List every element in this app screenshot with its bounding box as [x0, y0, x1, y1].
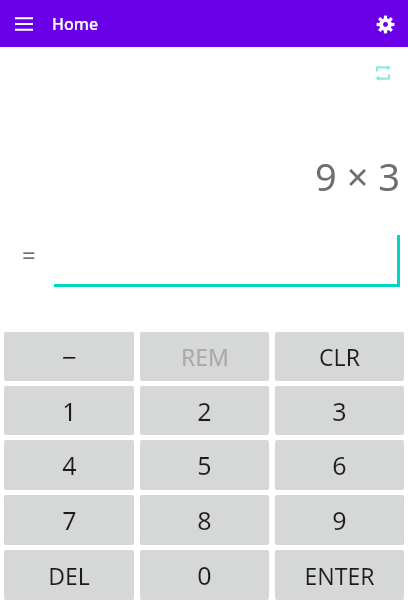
- staticText: 6: [332, 448, 347, 482]
- button[interactable]: 6: [275, 440, 404, 490]
- button[interactable]: 4: [4, 440, 134, 490]
- button[interactable]: 3: [275, 386, 404, 435]
- staticText: =: [22, 238, 36, 271]
- button[interactable]: −: [4, 332, 134, 381]
- button[interactable]: CLR: [275, 332, 404, 381]
- button[interactable]: 7: [4, 495, 134, 545]
- staticText: 9 × 3: [315, 150, 400, 202]
- staticText: −: [62, 339, 77, 374]
- button[interactable]: [54, 235, 400, 287]
- staticText: 4: [62, 448, 77, 482]
- staticText: 0: [197, 558, 212, 592]
- button[interactable]: 8: [140, 495, 269, 545]
- staticText: 9: [332, 503, 347, 537]
- button[interactable]: DEL: [4, 550, 134, 600]
- staticText: ENTER: [304, 560, 375, 591]
- button[interactable]: 1: [4, 386, 134, 435]
- button[interactable]: REM: [140, 332, 269, 381]
- staticText: 5: [197, 448, 212, 482]
- button[interactable]: 2: [140, 386, 269, 435]
- staticText: Home: [52, 13, 99, 35]
- staticText: CLR: [319, 341, 360, 372]
- staticText: 7: [62, 503, 77, 537]
- button[interactable]: Settings: [368, 7, 402, 41]
- button[interactable]: ENTER: [275, 550, 404, 600]
- staticText: 3: [332, 394, 347, 428]
- staticText: DEL: [48, 560, 90, 591]
- button[interactable]: 9: [275, 495, 404, 545]
- button[interactable]: 5: [140, 440, 269, 490]
- button[interactable]: Open navigation menu: [8, 8, 40, 40]
- staticText: REM: [181, 341, 229, 372]
- staticText: 1: [62, 394, 77, 428]
- button[interactable]: Repeat: [366, 56, 400, 90]
- staticText: 8: [197, 503, 212, 537]
- staticText: 2: [197, 394, 212, 428]
- button[interactable]: 0: [140, 550, 269, 600]
